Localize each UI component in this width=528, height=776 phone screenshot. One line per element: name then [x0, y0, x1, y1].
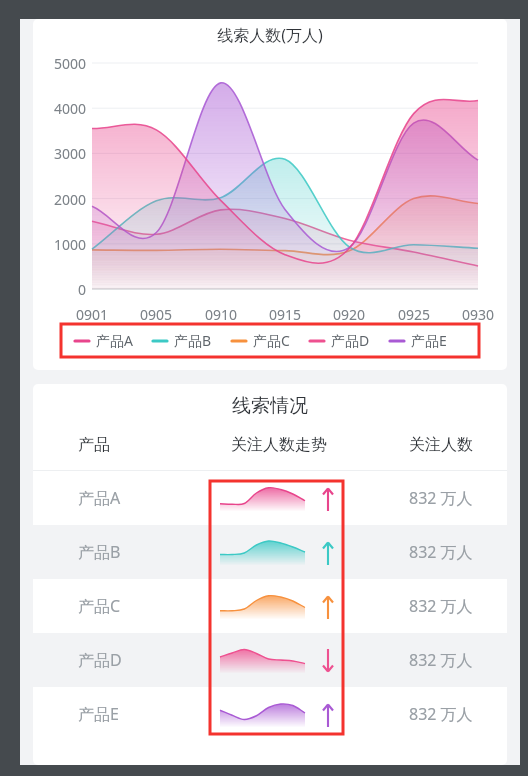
- staticText: 产品E: [411, 331, 447, 350]
- staticText: 0920: [333, 305, 366, 323]
- staticText: 产品D: [78, 649, 122, 671]
- staticText: 0925: [398, 305, 431, 323]
- staticText: 产品D: [331, 331, 370, 350]
- staticText: 3000: [54, 144, 87, 162]
- button[interactable]: 产品C: [33, 579, 507, 633]
- staticText: 产品B: [78, 541, 121, 563]
- staticText: 0910: [205, 305, 238, 323]
- staticText: 产品C: [78, 595, 121, 617]
- staticText: 0915: [269, 305, 302, 323]
- button[interactable]: 产品B: [33, 525, 507, 579]
- staticText: 关注人数走势: [231, 435, 327, 455]
- staticText: 线索情况: [232, 394, 308, 418]
- staticText: 832 万人: [409, 541, 473, 563]
- staticText: 832 万人: [409, 487, 473, 509]
- staticText: 线索人数(万人): [33, 24, 507, 46]
- staticText: 1000: [54, 235, 87, 253]
- staticText: 0901: [76, 305, 109, 323]
- staticText: 2000: [54, 190, 87, 208]
- button[interactable]: 产品D: [310, 331, 370, 350]
- staticText: 832 万人: [409, 595, 473, 617]
- staticText: 832 万人: [409, 703, 473, 725]
- staticText: 0: [78, 280, 87, 298]
- staticText: 4000: [54, 99, 87, 117]
- button[interactable]: 产品C: [232, 331, 290, 350]
- button[interactable]: 产品E: [390, 331, 447, 350]
- staticText: 5000: [54, 54, 87, 72]
- staticText: 832 万人: [409, 649, 473, 671]
- staticText: 产品A: [96, 331, 133, 350]
- staticText: 关注人数: [409, 435, 473, 455]
- staticText: 产品: [78, 435, 110, 455]
- staticText: 0905: [140, 305, 173, 323]
- staticText: 产品A: [78, 487, 121, 509]
- button[interactable]: 产品A: [33, 471, 507, 525]
- button[interactable]: 产品E: [33, 687, 507, 741]
- button[interactable]: 产品A: [75, 331, 133, 350]
- button[interactable]: 产品D: [33, 633, 507, 687]
- staticText: 0930: [462, 305, 495, 323]
- staticText: 产品C: [253, 331, 290, 350]
- button[interactable]: 产品B: [153, 331, 212, 350]
- staticText: 产品B: [174, 331, 212, 350]
- staticText: 产品E: [78, 703, 119, 725]
